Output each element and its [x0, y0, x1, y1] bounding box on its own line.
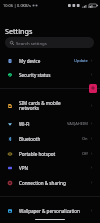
staticText: SIM cards & mobile networks — [19, 100, 61, 112]
staticText: VPN — [19, 165, 29, 171]
staticText: Portable hotspot — [19, 151, 56, 157]
staticText: Security status — [19, 72, 51, 78]
staticText: Update — [74, 58, 88, 63]
button[interactable]: My device — [0, 53, 100, 68]
staticText: 10:06 | 0.0KB/s — [3, 3, 31, 8]
button[interactable]: Connection & sharing — [0, 175, 100, 190]
staticText: Search settings — [16, 40, 47, 46]
staticText: Connection & sharing — [19, 180, 66, 186]
button[interactable]: Security status — [0, 67, 100, 82]
button[interactable]: Floating shortcut — [89, 84, 97, 93]
staticText: Bluetooth — [19, 136, 41, 142]
staticText: Settings — [5, 26, 33, 36]
staticText: Wallpaper & personalization — [19, 208, 80, 214]
staticText: VAXJAHEIM — [67, 121, 88, 126]
staticText: On — [82, 136, 88, 141]
button[interactable]: Search settings — [5, 37, 94, 48]
staticText: My device — [19, 58, 41, 64]
button[interactable]: VPN — [0, 160, 100, 175]
button[interactable]: Wallpaper & personalization — [0, 203, 100, 218]
button[interactable]: SIM cards & mobile networks — [0, 95, 100, 116]
button[interactable]: Wi-Fi — [0, 116, 100, 131]
staticText: Wi-Fi — [19, 121, 30, 127]
button[interactable]: Bluetooth — [0, 131, 100, 146]
staticText: Off — [82, 151, 88, 156]
button[interactable]: Portable hotspot — [0, 146, 100, 161]
